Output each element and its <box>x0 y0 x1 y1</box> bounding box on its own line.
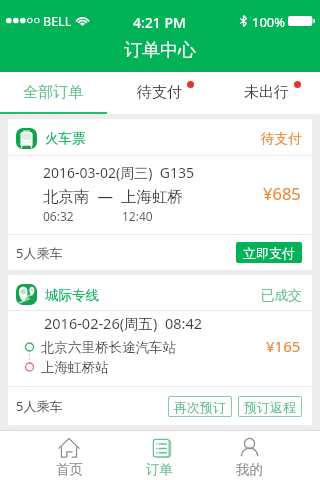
staticText: 已成交 <box>261 287 302 304</box>
button[interactable]: Home <box>24 431 114 480</box>
button[interactable]: 预订返程 <box>238 396 302 417</box>
button[interactable]: 待支付 <box>106 72 213 114</box>
staticText: 预订返程 <box>244 399 296 415</box>
staticText: ¥685 <box>263 182 301 204</box>
staticText: 北京南 — 上海虹桥 <box>43 185 184 206</box>
button[interactable]: 城际专线 <box>8 275 312 425</box>
staticText: ¥165 <box>266 336 301 356</box>
staticText: 2016-02-26(周五) 08:42 <box>44 313 202 333</box>
staticText: 火车票 <box>45 130 86 147</box>
staticText: 城际专线 <box>45 287 99 304</box>
staticText: 未出行 <box>244 83 289 102</box>
staticText: 06:32 <box>43 208 74 224</box>
button[interactable]: 全部订单 <box>0 72 106 114</box>
staticText: 北京六里桥长途汽车站 <box>41 339 176 356</box>
staticText: 100% <box>252 13 286 28</box>
staticText: 首页 <box>56 461 83 478</box>
staticText: 订单中心 <box>124 39 196 62</box>
staticText: 2016-03-02(周三) G135 <box>43 163 194 182</box>
staticText: 5人乘车 <box>16 244 63 262</box>
staticText: 立即支付 <box>243 245 295 261</box>
button[interactable]: 立即支付 <box>236 242 302 263</box>
staticText: 再次预订 <box>174 399 226 415</box>
staticText: 我的 <box>236 461 263 478</box>
staticText: 12:40 <box>122 208 153 224</box>
staticText: 全部订单 <box>23 83 83 102</box>
button[interactable]: 火车票 <box>8 119 312 270</box>
staticText: 上海虹桥站 <box>41 359 109 376</box>
staticText: 5人乘车 <box>16 397 63 415</box>
staticText: BELL <box>43 13 72 28</box>
staticText: 待支付 <box>261 130 302 147</box>
button[interactable]: 未出行 <box>213 72 320 114</box>
button[interactable]: Orders <box>114 431 204 480</box>
staticText: 4:21 PM <box>133 13 186 28</box>
staticText: 订单 <box>146 461 173 478</box>
button[interactable]: 再次预订 <box>168 396 232 417</box>
button[interactable]: Profile <box>204 431 294 480</box>
staticText: 待支付 <box>137 83 182 102</box>
